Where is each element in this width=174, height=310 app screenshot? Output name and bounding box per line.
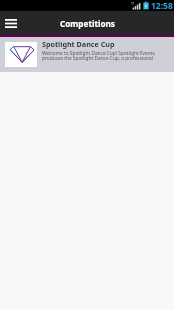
staticText: Welcome to Spotlight Dance Cup! Spotligh…: [42, 50, 172, 61]
button[interactable]: Spotlight Dance Cup: [0, 37, 174, 72]
staticText: Competitions: [60, 18, 115, 29]
button[interactable]: Open navigation menu: [0, 12, 22, 34]
staticText: Spotlight Dance Cup: [42, 39, 115, 49]
staticText: 12:58: [151, 0, 173, 11]
